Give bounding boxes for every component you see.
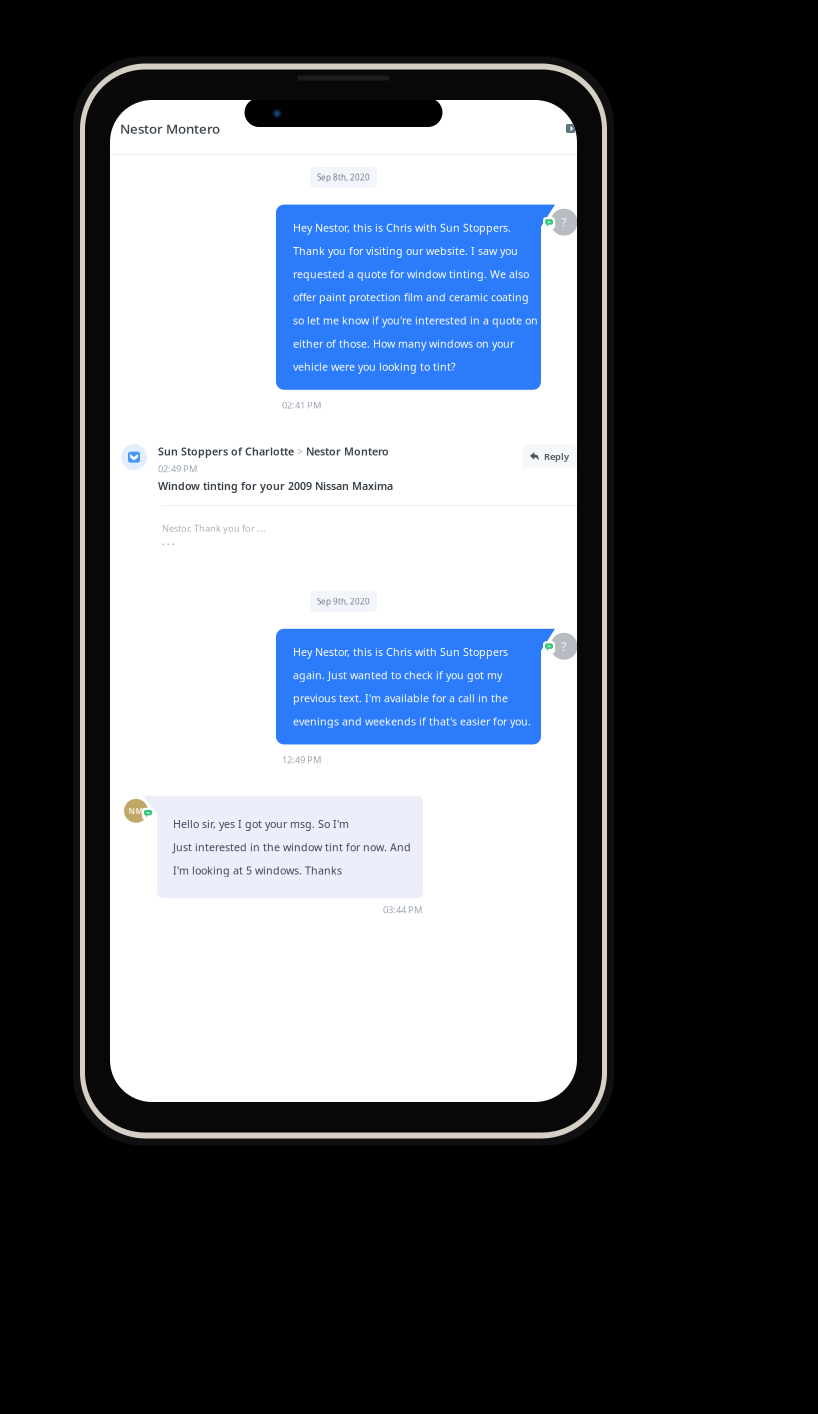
staticText: evenings and weekends if that's easier f… bbox=[293, 714, 531, 728]
staticText: ? bbox=[561, 214, 567, 230]
staticText: previous text. I'm available for a call … bbox=[293, 691, 508, 705]
button[interactable]: Conversation details bbox=[566, 124, 575, 133]
staticText: Sun Stoppers of Charlotte bbox=[158, 444, 294, 458]
staticText: again. Just wanted to check if you got m… bbox=[293, 668, 502, 682]
staticText: vehicle were you looking to tint? bbox=[293, 360, 456, 374]
staticText: 02:41 PM bbox=[282, 399, 321, 411]
staticText: Nestor Montero bbox=[306, 444, 389, 458]
staticText: Hello sir, yes I got your msg. So I'm bbox=[173, 817, 349, 831]
staticText: requested a quote for window tinting. We… bbox=[293, 267, 529, 281]
staticText: Nestor, Thank you for ... bbox=[162, 522, 266, 534]
staticText: Window tinting for your 2009 Nissan Maxi… bbox=[158, 479, 393, 493]
staticText: Sep 9th, 2020 bbox=[317, 596, 370, 607]
staticText: NM bbox=[128, 805, 143, 816]
staticText: > bbox=[294, 444, 306, 458]
staticText: so let me know if you're interested in a… bbox=[293, 313, 538, 327]
staticText: Thank you for visiting our website. I sa… bbox=[293, 244, 518, 258]
staticText: ? bbox=[561, 638, 567, 654]
staticText: offer paint protection film and ceramic … bbox=[293, 290, 529, 304]
staticText: Reply bbox=[544, 450, 569, 463]
button[interactable]: Reply bbox=[522, 444, 577, 469]
staticText: Nestor Montero bbox=[120, 120, 220, 137]
staticText: • • • bbox=[162, 540, 175, 549]
staticText: I'm looking at 5 windows. Thanks bbox=[173, 863, 342, 877]
staticText: 02:49 PM bbox=[158, 462, 197, 475]
staticText: Sep 8th, 2020 bbox=[317, 172, 370, 183]
staticText: Just interested in the window tint for n… bbox=[173, 840, 411, 854]
staticText: 03:44 PM bbox=[383, 903, 422, 916]
staticText: 12:49 PM bbox=[282, 753, 321, 766]
staticText: either of those. How many windows on you… bbox=[293, 336, 514, 351]
staticText: Hey Nestor, this is Chris with Sun Stopp… bbox=[293, 645, 508, 659]
staticText: Hey Nestor, this is Chris with Sun Stopp… bbox=[293, 221, 511, 235]
